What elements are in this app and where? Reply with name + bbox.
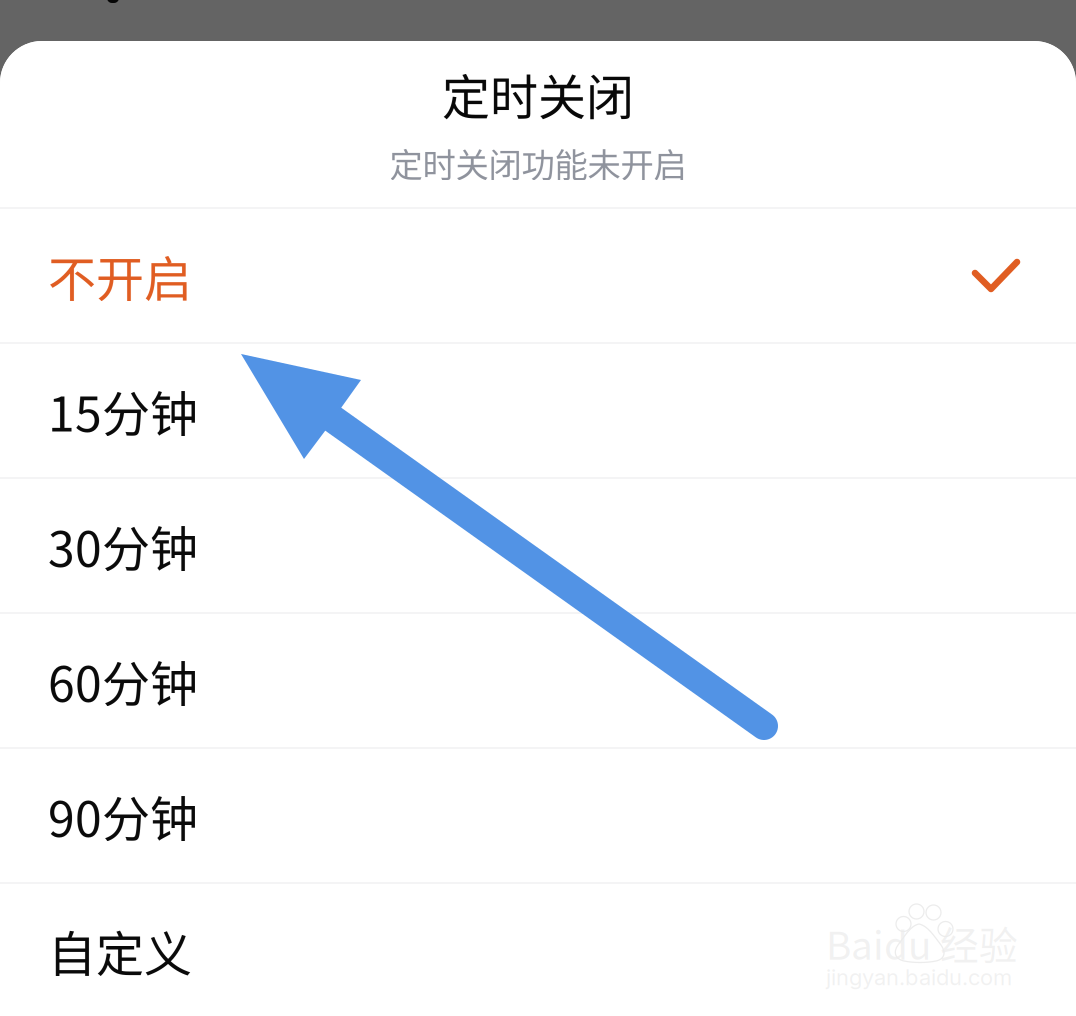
button[interactable]: 90分钟 [0,749,1076,882]
staticText: 定时关闭 [442,59,634,128]
staticText: 30分钟 [48,511,198,580]
staticText: 不开启 [48,241,192,310]
staticText: 90分钟 [48,781,198,850]
button[interactable]: 30分钟 [0,479,1076,612]
button[interactable]: 不开启 [0,209,1076,342]
button[interactable]: 60分钟 [0,614,1076,747]
staticText: 定时关闭功能未开启 [389,138,686,187]
staticText: jingyan.baidu.com [826,964,1012,991]
staticText: 15分钟 [48,376,198,445]
button[interactable]: 15分钟 [0,344,1076,477]
staticText: 60分钟 [48,646,198,715]
staticText: 自定义 [48,916,192,985]
button[interactable]: 自定义 [0,884,1076,1016]
staticText: Baidu 经验 [826,915,1018,971]
